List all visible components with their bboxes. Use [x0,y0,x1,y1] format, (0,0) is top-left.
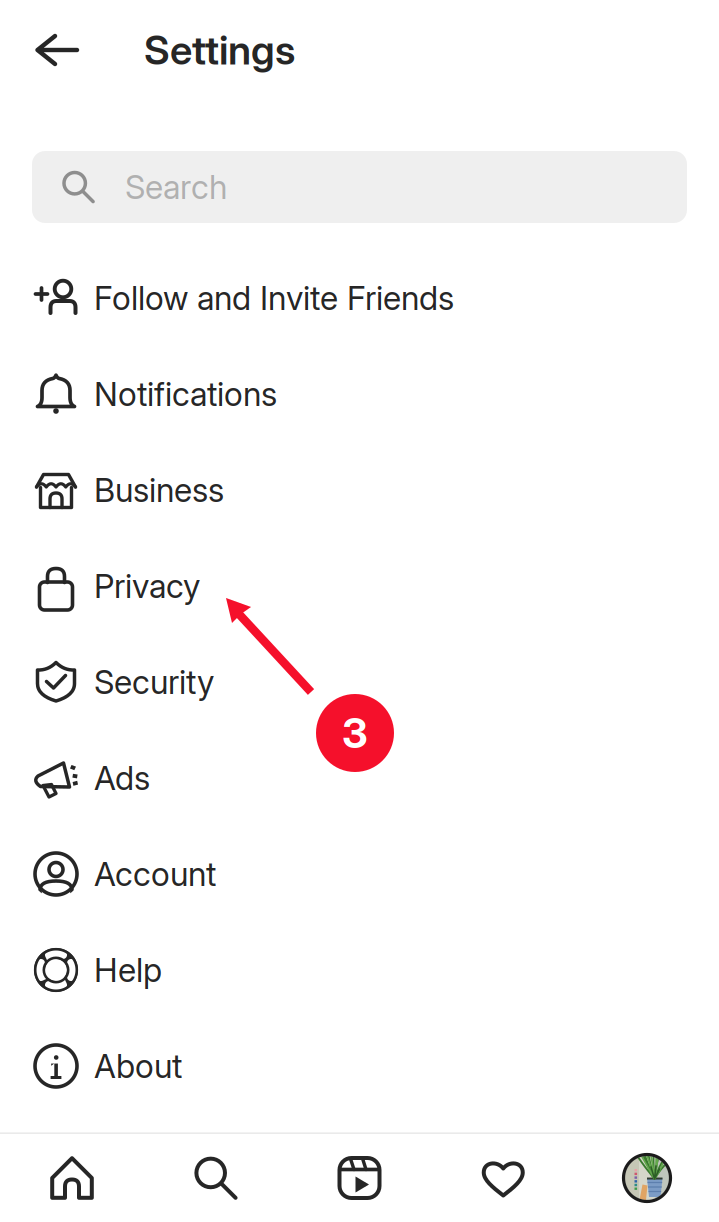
staticText: Ads [94,758,150,798]
button[interactable]: Help [0,922,719,1018]
button[interactable]: Notifications [0,346,719,442]
staticText: Settings [144,26,295,74]
staticText: Privacy [94,566,200,606]
staticText: Help [94,950,162,990]
button[interactable]: Reels [314,1134,404,1222]
staticText: Security [94,662,214,702]
staticText: Search [125,167,227,207]
button[interactable]: Activity [458,1134,548,1222]
staticText: 3 [342,708,368,758]
button[interactable]: Home [27,1134,117,1222]
staticText: Account [94,854,216,894]
button[interactable]: Security [0,634,719,730]
button[interactable]: Follow and Invite Friends [0,250,719,346]
button[interactable]: About [0,1018,719,1114]
button[interactable]: Account [0,826,719,922]
staticText: Follow and Invite Friends [94,278,454,318]
button[interactable]: Privacy [0,538,719,634]
button[interactable]: Business [0,442,719,538]
button[interactable]: Search [171,1134,261,1222]
button[interactable]: Profile [602,1134,692,1222]
button[interactable]: Back [26,18,88,82]
button[interactable]: Ads [0,730,719,826]
button[interactable]: Search [32,151,687,223]
staticText: Business [94,470,224,510]
staticText: Notifications [94,374,277,414]
staticText: About [94,1046,182,1086]
